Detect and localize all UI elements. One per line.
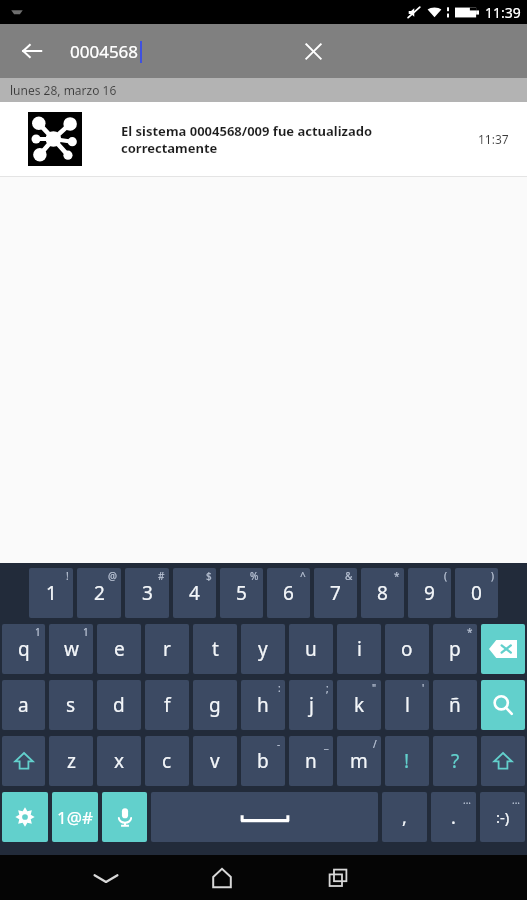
staticText: )	[491, 569, 494, 583]
staticText: 5	[236, 580, 247, 606]
staticText: h	[257, 692, 269, 718]
staticText: .	[451, 805, 456, 830]
staticText: ,	[402, 805, 407, 830]
button[interactable]: y	[241, 624, 285, 674]
staticText: 1	[35, 625, 41, 639]
button[interactable]: Clear search	[291, 29, 335, 73]
button[interactable]: Shift	[2, 736, 45, 786]
staticText: 1	[83, 625, 89, 639]
button[interactable]: 5	[220, 568, 263, 618]
staticText: y	[258, 636, 268, 662]
staticText: ...	[512, 793, 521, 807]
button[interactable]: v	[193, 736, 237, 786]
button[interactable]: .	[431, 792, 476, 842]
button[interactable]: f	[145, 680, 189, 730]
staticText: c	[162, 748, 172, 774]
staticText: 6	[283, 580, 294, 606]
button[interactable]: Shift	[481, 736, 525, 786]
button[interactable]: ñ	[433, 680, 477, 730]
staticText: ;	[326, 681, 329, 695]
button[interactable]: e	[97, 624, 141, 674]
staticText: l	[405, 692, 410, 718]
button[interactable]: !	[385, 736, 429, 786]
button[interactable]: p	[433, 624, 477, 674]
button[interactable]: j	[289, 680, 333, 730]
staticText: d	[113, 692, 125, 718]
button[interactable]: t	[193, 624, 237, 674]
button[interactable]: Home	[196, 855, 248, 900]
staticText: z	[67, 748, 76, 774]
button[interactable]: 3	[125, 568, 169, 618]
button[interactable]: m	[337, 736, 381, 786]
button[interactable]: 6	[267, 568, 310, 618]
button[interactable]: 9	[408, 568, 451, 618]
button[interactable]: g	[193, 680, 237, 730]
button[interactable]: ?	[433, 736, 477, 786]
staticText: -	[277, 737, 281, 751]
button[interactable]: Hide keyboard	[80, 855, 132, 900]
staticText: 3	[142, 580, 153, 606]
button[interactable]: z	[49, 736, 93, 786]
staticText: t	[212, 636, 219, 662]
button[interactable]: s	[49, 680, 93, 730]
staticText: o	[401, 636, 413, 662]
button[interactable]: q	[2, 624, 45, 674]
button[interactable]: 8	[361, 568, 404, 618]
button[interactable]: Backspace	[481, 624, 525, 674]
button[interactable]: 7	[314, 568, 357, 618]
button[interactable]: w	[49, 624, 93, 674]
button[interactable]: El sistema 0004568/009 fue actualizado c…	[0, 102, 527, 176]
staticText: !	[66, 569, 69, 583]
staticText: v	[210, 748, 220, 774]
button[interactable]: h	[241, 680, 285, 730]
staticText: 4	[189, 580, 200, 606]
staticText: p	[449, 636, 461, 662]
staticText: 1@#	[57, 806, 93, 829]
button[interactable]: c	[145, 736, 189, 786]
staticText: x	[114, 748, 125, 774]
staticText: 7	[330, 580, 341, 606]
staticText: 8	[377, 580, 388, 606]
staticText: 0	[471, 580, 482, 606]
button[interactable]: Recent apps	[312, 855, 364, 900]
staticText: *	[467, 625, 473, 639]
staticText: b	[257, 748, 269, 774]
staticText: *	[394, 569, 400, 583]
button[interactable]: Keyboard settings	[2, 792, 48, 842]
staticText: a	[18, 692, 29, 718]
button[interactable]: k	[337, 680, 381, 730]
button[interactable]: d	[97, 680, 141, 730]
button[interactable]: i	[337, 624, 381, 674]
button[interactable]: :-)	[480, 792, 525, 842]
staticText: (	[444, 569, 447, 583]
button[interactable]: o	[385, 624, 429, 674]
button[interactable]: ,	[382, 792, 427, 842]
button[interactable]: Space	[151, 792, 378, 842]
button[interactable]: x	[97, 736, 141, 786]
staticText: m	[350, 748, 368, 774]
staticText: f	[164, 692, 171, 718]
button[interactable]: 4	[173, 568, 216, 618]
button[interactable]: u	[289, 624, 333, 674]
button[interactable]: Search	[481, 680, 525, 730]
staticText: n	[305, 748, 317, 774]
button[interactable]: r	[145, 624, 189, 674]
button[interactable]: 0	[455, 568, 498, 618]
button[interactable]: b	[241, 736, 285, 786]
button[interactable]: n	[289, 736, 333, 786]
staticText: 0004568	[70, 40, 139, 63]
button[interactable]: Back	[10, 29, 54, 73]
button[interactable]: 1	[29, 568, 73, 618]
staticText: :-)	[496, 807, 510, 827]
button[interactable]: 2	[77, 568, 121, 618]
staticText: ^	[300, 569, 306, 583]
staticText: j	[309, 692, 314, 718]
staticText: #	[158, 569, 165, 583]
staticText: 1	[46, 580, 57, 606]
button[interactable]: 1@#	[52, 792, 98, 842]
button[interactable]: l	[385, 680, 429, 730]
staticText: s	[66, 692, 76, 718]
button[interactable]: a	[2, 680, 45, 730]
button[interactable]: Voice input	[102, 792, 147, 842]
staticText: 11:39	[485, 3, 521, 22]
